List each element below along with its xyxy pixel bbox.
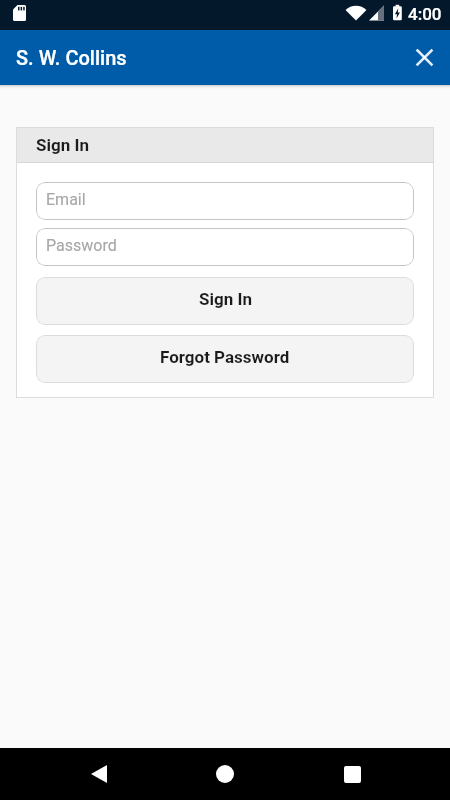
button[interactable] xyxy=(409,42,439,72)
button[interactable]: Forgot Password xyxy=(36,335,414,383)
staticText: Email xyxy=(46,190,86,209)
button[interactable] xyxy=(209,758,241,790)
button[interactable] xyxy=(336,758,368,790)
button[interactable]: Password xyxy=(36,228,414,266)
staticText: S. W. Collins xyxy=(16,46,127,69)
staticText: Sign In xyxy=(36,135,89,155)
button[interactable]: Email xyxy=(36,182,414,220)
staticText: Sign In xyxy=(199,289,252,309)
staticText: Password xyxy=(46,236,117,255)
button[interactable]: Sign In xyxy=(36,277,414,325)
button[interactable] xyxy=(83,758,115,790)
staticText: 4:00 xyxy=(408,4,442,24)
staticText: Forgot Password xyxy=(160,347,290,367)
